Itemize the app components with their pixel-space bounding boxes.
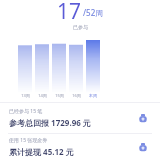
staticText: 本周 bbox=[89, 93, 97, 98]
button[interactable]: 已经参与 15 笔 bbox=[0, 103, 160, 133]
staticText: 15周 bbox=[55, 93, 64, 98]
staticText: 参考总回报 1729.96 元 bbox=[9, 117, 91, 128]
other: 回报详情 bbox=[136, 111, 150, 125]
staticText: 已经参与 15 笔 bbox=[9, 108, 43, 115]
other: 提现详情 bbox=[136, 140, 150, 154]
staticText: 14周 bbox=[38, 93, 47, 98]
staticText: /52周 bbox=[83, 7, 104, 18]
staticText: 13周 bbox=[21, 93, 30, 98]
button[interactable]: 使用 15 张现金券 bbox=[0, 134, 160, 160]
staticText: 累计提现 45.12 元 bbox=[9, 146, 74, 157]
staticText: 17 bbox=[57, 0, 82, 21]
staticText: 16周 bbox=[72, 93, 81, 98]
staticText: 使用 15 张现金券 bbox=[9, 137, 48, 144]
staticText: 已参与 bbox=[73, 24, 88, 30]
